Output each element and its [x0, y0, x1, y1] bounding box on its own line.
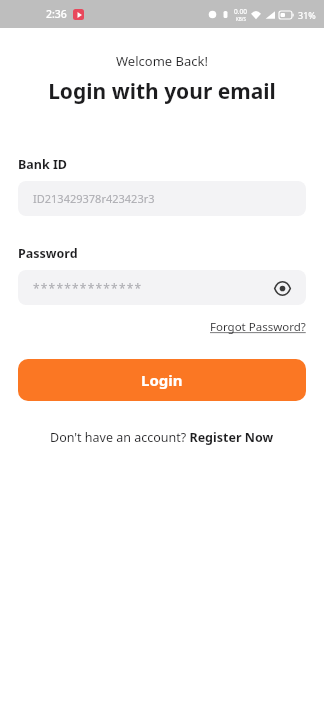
button[interactable]: Don't have an account? Register Now	[46, 425, 278, 450]
button[interactable]: **************	[18, 270, 306, 305]
staticText: ID213429378r423423r3	[33, 191, 155, 206]
button[interactable]: Show password	[270, 276, 294, 300]
button[interactable]: Forgot Password?	[192, 317, 324, 337]
staticText: Don't have an account? Register Now	[50, 429, 274, 446]
staticText: Login with your email	[0, 77, 324, 106]
staticText: Forgot Password?	[210, 319, 306, 335]
staticText: Login	[141, 370, 183, 390]
staticText: 31%	[298, 9, 316, 21]
staticText: 0.00	[234, 7, 247, 16]
staticText: KB/S	[236, 16, 246, 22]
staticText: 2:36	[46, 7, 67, 21]
button[interactable]: ID213429378r423423r3	[18, 181, 306, 216]
staticText: Bank ID	[18, 156, 67, 173]
staticText: **************	[33, 280, 143, 296]
button[interactable]: Login	[18, 359, 306, 401]
staticText: Welcome Back!	[0, 52, 324, 70]
staticText: Password	[18, 245, 78, 262]
